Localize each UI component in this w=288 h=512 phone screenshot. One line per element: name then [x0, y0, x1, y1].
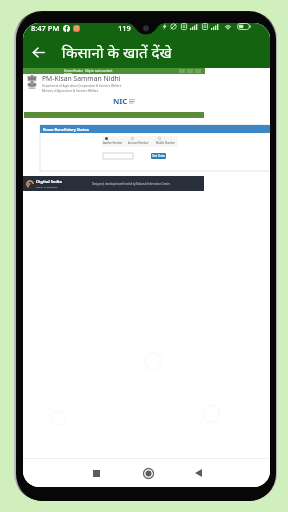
- staticText: Digital India: [36, 179, 62, 185]
- staticText: NIC: [113, 96, 128, 107]
- button[interactable]: Home: [136, 461, 160, 485]
- button[interactable]: Aadhar Number: [103, 137, 123, 145]
- staticText: Screen Reader Skip to main content: [64, 69, 113, 73]
- staticText: PM-Kisan Samman Nidhi: [42, 74, 121, 83]
- staticText: Designed, developed and hosted by Nation…: [92, 182, 170, 186]
- staticText: Ministry of Agriculture & Farmers Welfar…: [42, 89, 99, 93]
- staticText: 8:47 PM: [31, 23, 60, 33]
- button[interactable]: Recent apps: [84, 461, 108, 485]
- staticText: किसानो के खातें देंखे: [62, 42, 172, 62]
- staticText: Know Beneficiary Status: [43, 127, 89, 132]
- button[interactable]: Get Data: [151, 153, 166, 159]
- button[interactable]: Mobile Number: [156, 137, 176, 145]
- staticText: Get Data: [152, 154, 166, 158]
- button[interactable]: Back: [186, 461, 210, 485]
- staticText: Department of Agriculture,Cooperation & …: [42, 84, 122, 88]
- staticText: Account Number: [128, 141, 149, 145]
- staticText: Power To Empower: [36, 185, 58, 188]
- staticText: Aadhar Number: [103, 141, 123, 145]
- staticText: 119: [118, 23, 131, 33]
- staticText: Mobile Number: [156, 141, 176, 145]
- button[interactable]: Account Number: [128, 137, 149, 145]
- staticText: English: [64, 71, 73, 74]
- button[interactable]: Back: [23, 37, 53, 67]
